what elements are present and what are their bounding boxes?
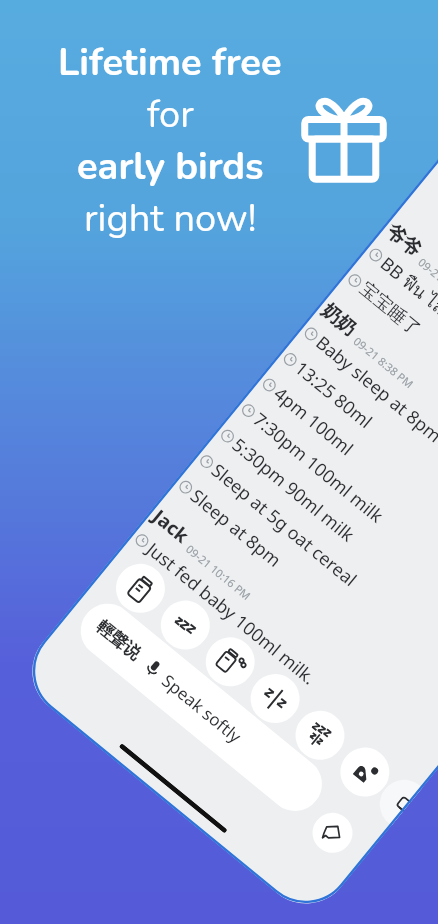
button[interactable]: 輕聲说: [70, 593, 333, 822]
staticText: 13:25 80ml: [290, 356, 377, 434]
staticText: 5:30pm 90ml milk: [227, 432, 360, 547]
staticText: BB ฟืน ไล: [374, 250, 438, 322]
button[interactable]: Nursing: [330, 738, 399, 807]
staticText: 7:30pm 100ml milk: [248, 407, 389, 529]
staticText: 09-21 8:42 PM: [415, 254, 438, 312]
staticText: 09-21 10:16 PM: [183, 541, 254, 603]
staticText: Sleep at 5g oat cereal: [206, 458, 362, 592]
button[interactable]: Bottle feeding: [106, 554, 175, 623]
staticText: 爷爷: [381, 220, 426, 262]
staticText: Speak softly: [157, 669, 246, 748]
staticText: Just fed baby 100ml milk.: [141, 537, 321, 690]
staticText: Jack: [147, 504, 195, 549]
staticText: 宝宝睡了: [355, 278, 425, 341]
staticText: Sleep at 8pm: [185, 483, 287, 573]
button[interactable]: Wake up: [241, 664, 310, 733]
staticText: Lifetime free: [58, 37, 282, 89]
staticText: 09-21 8:38 PM: [351, 333, 417, 391]
button[interactable]: Expand: [370, 770, 422, 826]
button[interactable]: End sleep: [285, 701, 354, 770]
staticText: 4pm 100ml: [269, 381, 359, 462]
staticText: 奶奶: [317, 298, 361, 341]
button[interactable]: Add note: [304, 805, 361, 861]
staticText: early birds: [77, 141, 264, 193]
staticText: right now!: [84, 193, 257, 245]
button[interactable]: Sleep: [151, 591, 220, 660]
staticText: 輕聲说: [92, 616, 145, 665]
staticText: for: [147, 89, 194, 141]
staticText: Baby sleep at 8pm: [311, 330, 438, 448]
button[interactable]: Bottle 30 ml: [196, 627, 265, 696]
